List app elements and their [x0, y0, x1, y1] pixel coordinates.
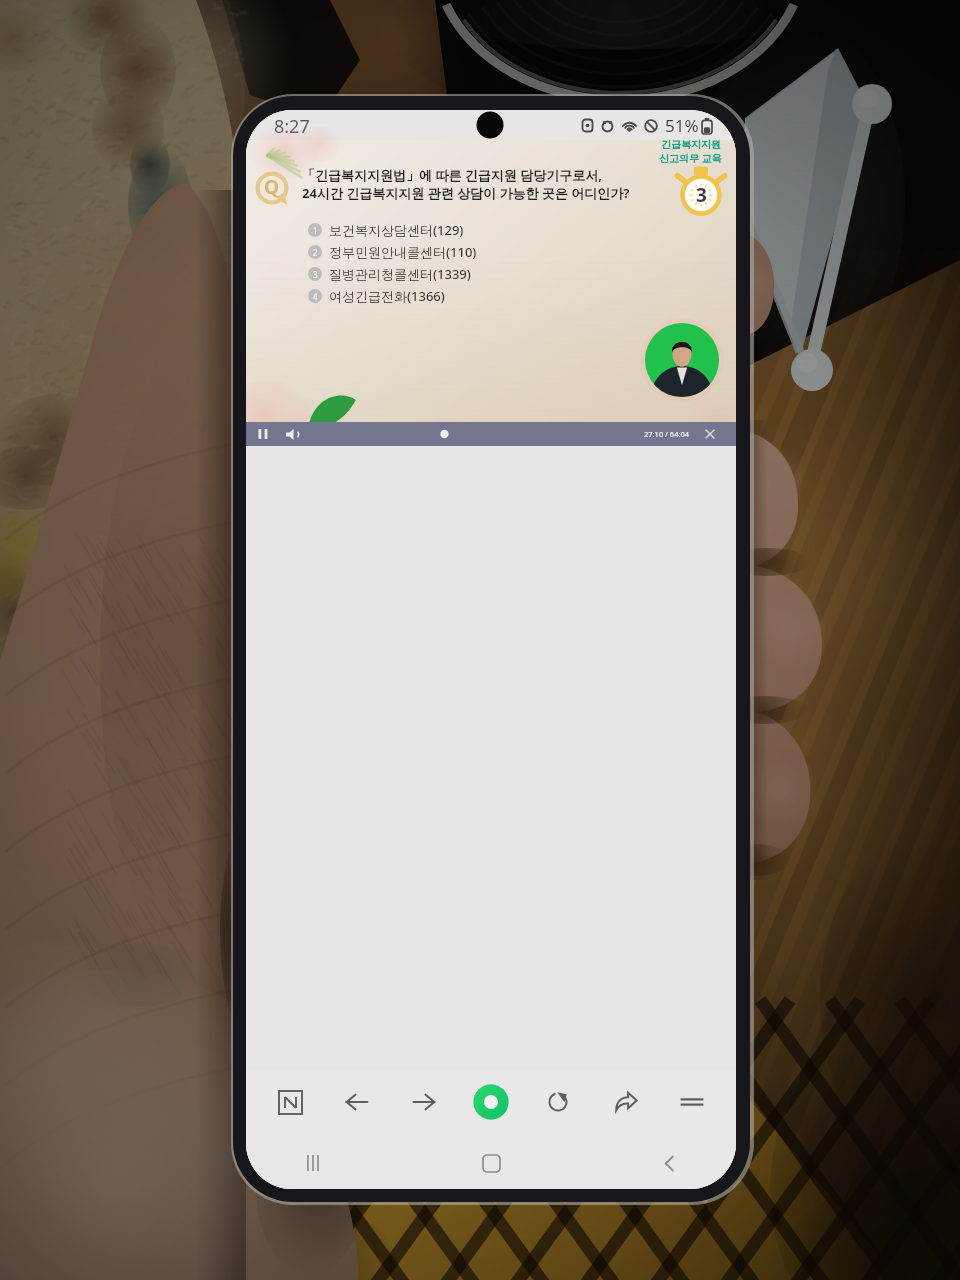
button[interactable]: Back	[646, 1140, 692, 1186]
staticText: 정부민원안내콜센터(110)	[329, 243, 477, 261]
staticText: 24시간 긴급복지지원 관련 상담이 가능한 곳은 어디인가?	[302, 184, 630, 202]
button[interactable]: Exit full screen	[698, 422, 722, 446]
button[interactable]: Refresh	[536, 1080, 580, 1124]
staticText: 4	[313, 291, 318, 302]
staticText: 「긴급복지지원법」에 따른 긴급지원 담당기구로서,	[302, 166, 602, 184]
staticText: 51%	[665, 114, 699, 137]
button[interactable]: Pause	[252, 422, 274, 446]
button[interactable]: Share	[603, 1080, 647, 1124]
staticText: 1	[313, 225, 318, 236]
button[interactable]: Back	[335, 1080, 379, 1124]
staticText: 여성긴급전화(1366)	[329, 287, 445, 305]
button[interactable]: Recents	[290, 1140, 336, 1186]
button[interactable]: Home	[468, 1140, 514, 1186]
staticText: 2	[313, 247, 318, 258]
staticText: 보건복지상담센터(129)	[329, 221, 464, 239]
staticText: 3	[313, 269, 318, 280]
staticText: 27:10 / 64:04	[644, 429, 690, 439]
staticText: 신고의무 교육	[659, 151, 722, 165]
button[interactable]: Video player	[246, 140, 736, 422]
staticText: 긴급복지지원	[661, 138, 721, 151]
staticText: Q	[264, 174, 280, 200]
button[interactable]: Menu	[670, 1080, 714, 1124]
staticText: 3	[696, 182, 707, 208]
button[interactable]: Volume	[280, 422, 304, 446]
button[interactable]: Naver home	[268, 1080, 312, 1124]
button[interactable]: Pause	[246, 422, 736, 446]
staticText: 질병관리청콜센터(1339)	[329, 265, 471, 283]
staticText: 8:27	[274, 114, 310, 139]
button[interactable]: Forward	[402, 1080, 446, 1124]
button[interactable]: Quick search	[469, 1080, 513, 1124]
